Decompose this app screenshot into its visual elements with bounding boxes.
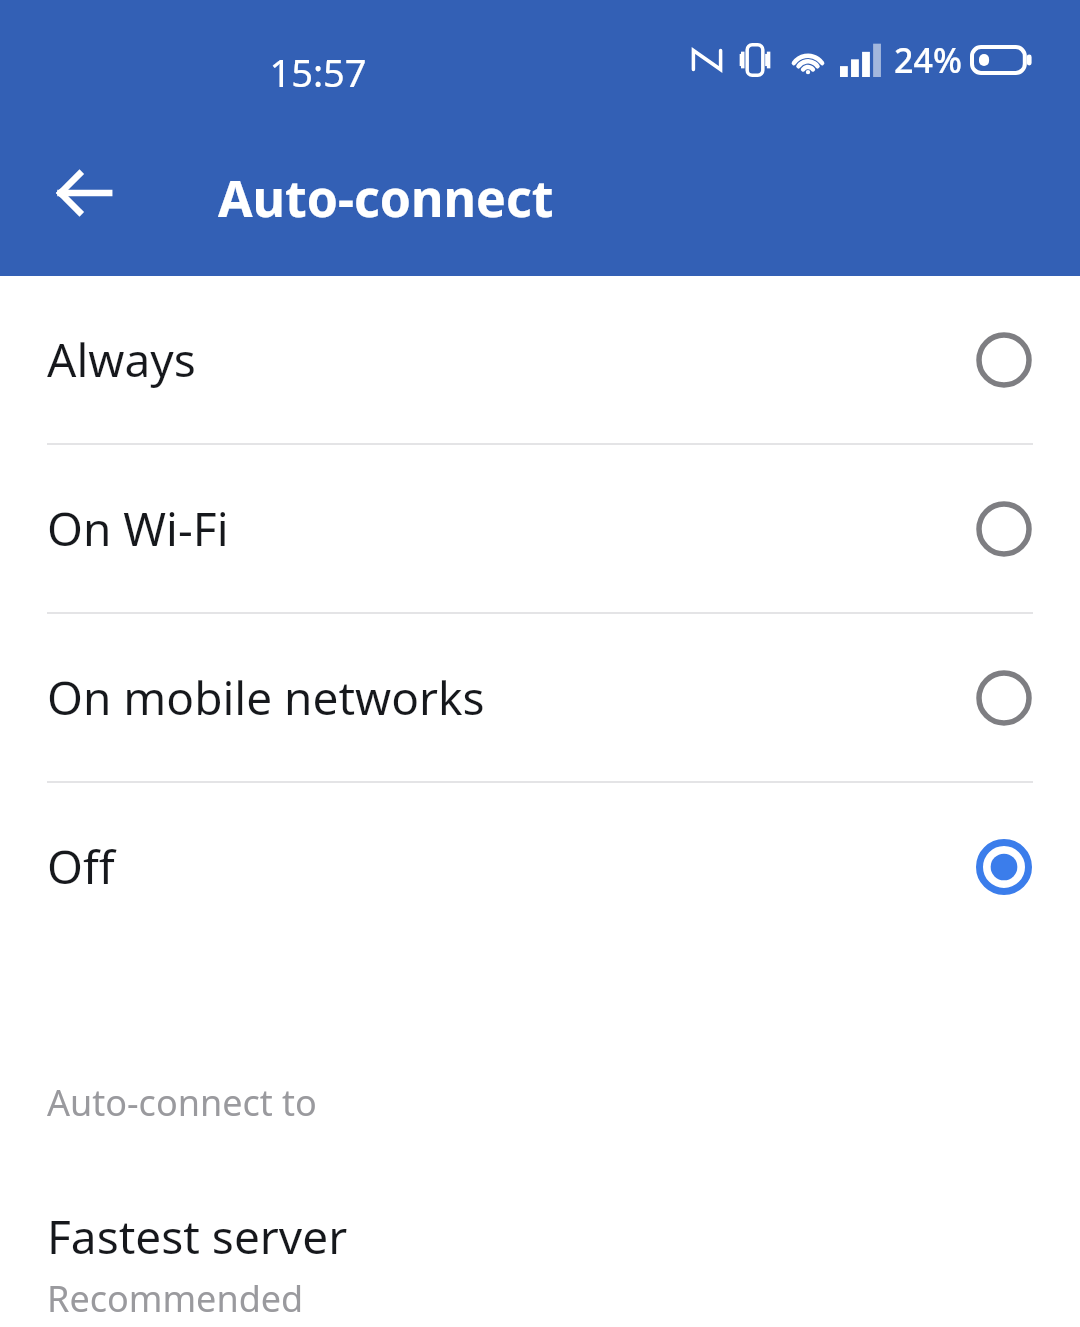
staticText: Off bbox=[47, 835, 975, 898]
staticText: Fastest server bbox=[47, 1205, 348, 1268]
staticText: 24% bbox=[894, 37, 962, 83]
button[interactable]: Back bbox=[30, 139, 138, 247]
staticText: Auto-connect to bbox=[47, 1078, 317, 1127]
button[interactable]: Always bbox=[0, 276, 1080, 443]
staticText: Recommended bbox=[47, 1274, 304, 1323]
button[interactable]: On mobile networks bbox=[0, 614, 1080, 781]
button[interactable]: On Wi-Fi bbox=[0, 445, 1080, 612]
staticText: Always bbox=[47, 328, 975, 391]
button[interactable]: Fastest server bbox=[0, 1205, 1080, 1323]
staticText: 15:57 bbox=[248, 46, 388, 98]
staticText: Auto-connect bbox=[218, 164, 554, 232]
staticText: On Wi-Fi bbox=[47, 497, 975, 560]
staticText: On mobile networks bbox=[47, 666, 975, 729]
button[interactable]: Off bbox=[0, 783, 1080, 950]
